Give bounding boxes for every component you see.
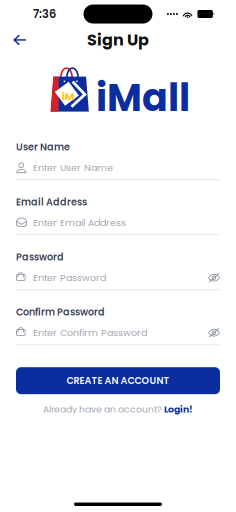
staticText: Already have an account? bbox=[43, 403, 164, 416]
staticText: Login! bbox=[164, 403, 193, 416]
button[interactable]: Show password bbox=[202, 273, 220, 283]
staticText: User Name bbox=[16, 140, 70, 154]
staticText: iM bbox=[62, 89, 75, 104]
button[interactable]: Already have an account? bbox=[16, 402, 220, 416]
button[interactable]: CREATE AN ACCOUNT bbox=[16, 367, 220, 394]
button[interactable]: Back bbox=[7, 30, 32, 50]
staticText: Enter Confirm Password bbox=[33, 326, 147, 339]
staticText: Password bbox=[16, 250, 64, 264]
staticText: Enter Email Address bbox=[33, 216, 126, 229]
staticText: iMall bbox=[96, 71, 190, 124]
staticText: CREATE AN ACCOUNT bbox=[66, 374, 169, 387]
staticText: Email Address bbox=[16, 195, 87, 209]
staticText: Enter Password bbox=[33, 271, 106, 284]
staticText: Enter User Name bbox=[33, 161, 113, 174]
button[interactable]: Show password bbox=[202, 328, 220, 338]
staticText: Sign Up bbox=[87, 29, 149, 51]
staticText: 7:36 bbox=[33, 6, 56, 22]
staticText: Confirm Password bbox=[16, 305, 105, 319]
